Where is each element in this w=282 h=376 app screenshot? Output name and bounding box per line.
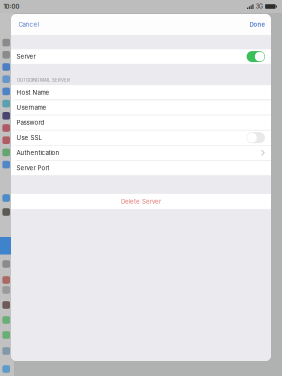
staticText: OUTGOING MAIL SERVER	[17, 77, 70, 83]
staticText: Host Name	[16, 89, 49, 96]
button[interactable]: Cancel	[15, 17, 41, 32]
staticText: Authentication	[16, 149, 59, 156]
staticText: Username	[16, 104, 46, 111]
staticText: 10:00	[3, 3, 19, 10]
staticText: Done	[249, 21, 264, 28]
staticText: Server	[16, 53, 35, 60]
staticText: Password	[16, 119, 44, 126]
button[interactable]: Done	[246, 17, 267, 32]
button[interactable]: Authentication	[11, 146, 271, 160]
staticText: Delete Server	[121, 198, 161, 205]
staticText: Server Port	[16, 164, 49, 172]
button[interactable]: Delete Server	[11, 194, 271, 209]
staticText: 3G	[256, 3, 263, 10]
staticText: Use SSL	[16, 134, 41, 141]
staticText: Cancel	[18, 21, 38, 28]
